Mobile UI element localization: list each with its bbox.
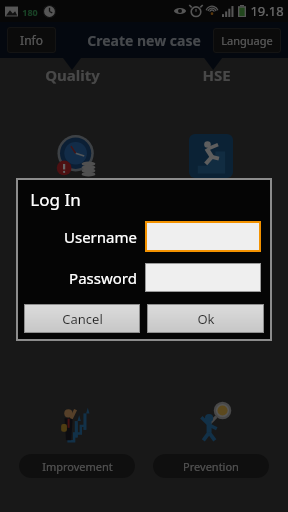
button[interactable]: Cancel [24,304,140,333]
button[interactable]: HSE [144,58,288,92]
button[interactable]: Ok [147,304,264,333]
staticText: Performance [43,192,111,207]
staticText: Quality [45,65,100,85]
button[interactable]: Prevention [153,397,269,478]
staticText: Language [221,33,273,48]
staticText: Password [69,268,137,288]
button[interactable]: Info [7,27,56,53]
staticText: Ok [197,310,215,328]
button[interactable]: Language [213,28,281,53]
staticText: 19.18 [250,2,284,20]
staticText: Create new case [87,31,201,50]
staticText: Username [64,227,137,247]
button[interactable]: Quality [0,58,144,92]
staticText: Prevention [183,459,239,474]
button[interactable]: Accident [153,130,269,211]
staticText: HSE [202,65,231,85]
button[interactable]: Improvement [19,397,135,478]
staticText: 180 [22,6,38,18]
staticText: Improvement [42,459,113,474]
button[interactable]: Performance [19,130,135,211]
staticText: Log In [30,188,81,211]
staticText: Cancel [62,310,103,328]
staticText: Info [20,32,43,48]
